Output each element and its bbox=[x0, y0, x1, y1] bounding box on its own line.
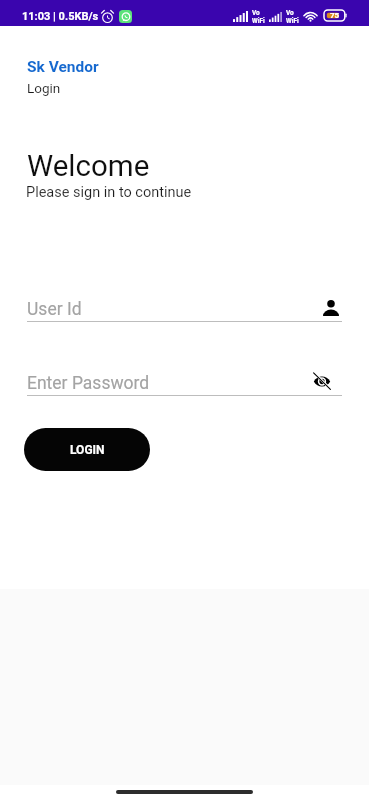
staticText: 75 bbox=[330, 11, 340, 20]
staticText: Enter Password bbox=[27, 373, 150, 394]
staticText: Vo bbox=[286, 9, 294, 17]
button[interactable]: Toggle password visibility bbox=[312, 372, 332, 390]
staticText: WiFi bbox=[252, 17, 265, 25]
staticText: 11:03 | 0.5KB/s bbox=[22, 10, 99, 23]
staticText: Welcome bbox=[27, 149, 150, 184]
staticText: LOGIN bbox=[70, 443, 105, 457]
staticText: WiFi bbox=[286, 17, 299, 25]
staticText: Login bbox=[27, 80, 61, 96]
staticText: User Id bbox=[27, 299, 82, 320]
button[interactable]: User bbox=[323, 300, 339, 316]
staticText: Vo bbox=[252, 9, 260, 17]
button[interactable]: Sk Vendor bbox=[27, 58, 99, 76]
button[interactable]: LOGIN bbox=[24, 428, 150, 471]
staticText: Please sign in to continue bbox=[26, 184, 192, 201]
